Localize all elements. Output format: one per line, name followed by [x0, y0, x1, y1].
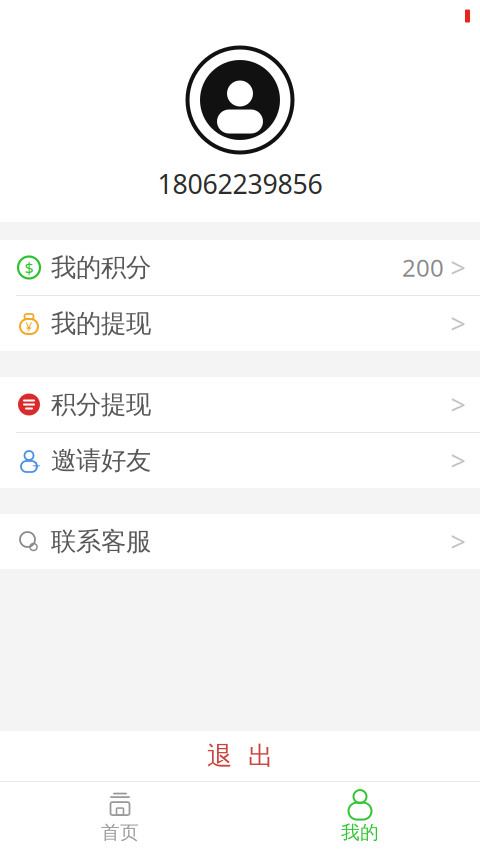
staticText: 联系客服 — [51, 526, 151, 557]
staticText: 退 出 — [207, 740, 273, 772]
button[interactable]: + — [0, 433, 480, 488]
staticText: 200 — [402, 252, 444, 283]
staticText: + — [32, 456, 40, 475]
button[interactable]: 积分提现 — [0, 377, 480, 432]
staticText: $ — [24, 257, 33, 278]
staticText: 邀请好友 — [51, 445, 151, 476]
staticText: 我的积分 — [51, 252, 151, 283]
staticText: > — [450, 443, 465, 478]
staticText: > — [450, 306, 465, 341]
button[interactable]: 我的 — [240, 782, 480, 853]
staticText: 我的 — [341, 821, 379, 844]
button[interactable]: ¥ — [0, 296, 480, 351]
staticText: 首页 — [101, 821, 139, 844]
button[interactable]: 首页 — [0, 782, 240, 853]
button[interactable]: $ — [0, 240, 480, 295]
staticText: > — [450, 387, 465, 422]
staticText: 我的提现 — [51, 308, 151, 339]
button[interactable]: 联系客服 — [0, 514, 480, 569]
staticText: ¥ — [25, 318, 32, 334]
staticText: > — [450, 250, 465, 285]
staticText: > — [450, 524, 465, 559]
staticText: 18062239856 — [157, 166, 322, 201]
staticText: 积分提现 — [51, 389, 151, 420]
button[interactable]: 退 出 — [0, 731, 480, 781]
